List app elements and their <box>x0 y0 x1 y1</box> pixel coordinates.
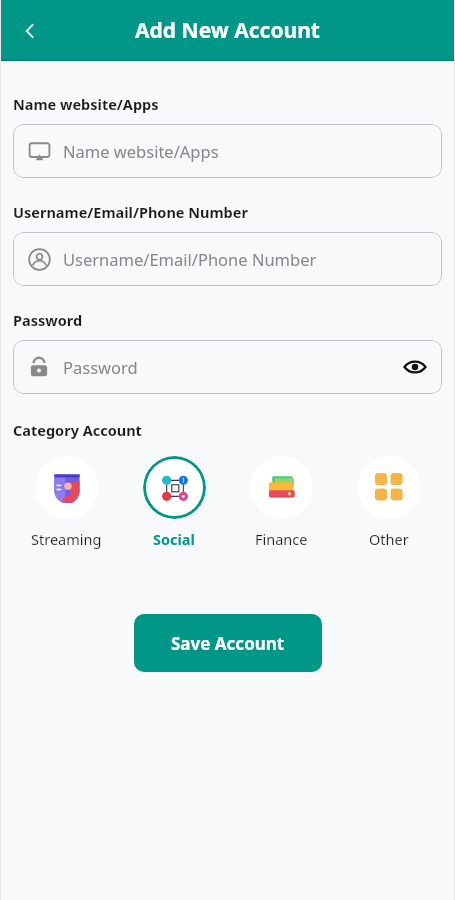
staticText: Social <box>153 529 195 549</box>
button[interactable]: Password <box>13 340 442 394</box>
button[interactable]: Social <box>124 454 224 551</box>
staticText: Finance <box>255 529 308 549</box>
staticText: Streaming <box>31 529 102 549</box>
staticText: Name website/Apps <box>63 140 428 162</box>
button[interactable]: Finance <box>231 454 331 551</box>
staticText: Save Account <box>171 632 285 655</box>
button[interactable]: Username/Email/Phone Number <box>13 232 442 286</box>
staticText: Add New Account <box>135 16 320 45</box>
staticText: Username/Email/Phone Number <box>63 248 428 270</box>
button[interactable]: Other <box>339 454 439 551</box>
button[interactable]: Streaming <box>16 454 116 551</box>
staticText: Password <box>63 356 402 378</box>
staticText: Username/Email/Phone Number <box>13 202 248 222</box>
staticText: Other <box>369 529 409 549</box>
button[interactable]: Show password <box>402 354 428 380</box>
button[interactable]: Save Account <box>134 614 322 672</box>
staticText: Password <box>13 310 83 330</box>
button[interactable]: Name website/Apps <box>13 124 442 178</box>
button[interactable]: Back <box>8 9 52 53</box>
staticText: Name website/Apps <box>13 94 159 114</box>
staticText: Category Account <box>13 420 142 440</box>
